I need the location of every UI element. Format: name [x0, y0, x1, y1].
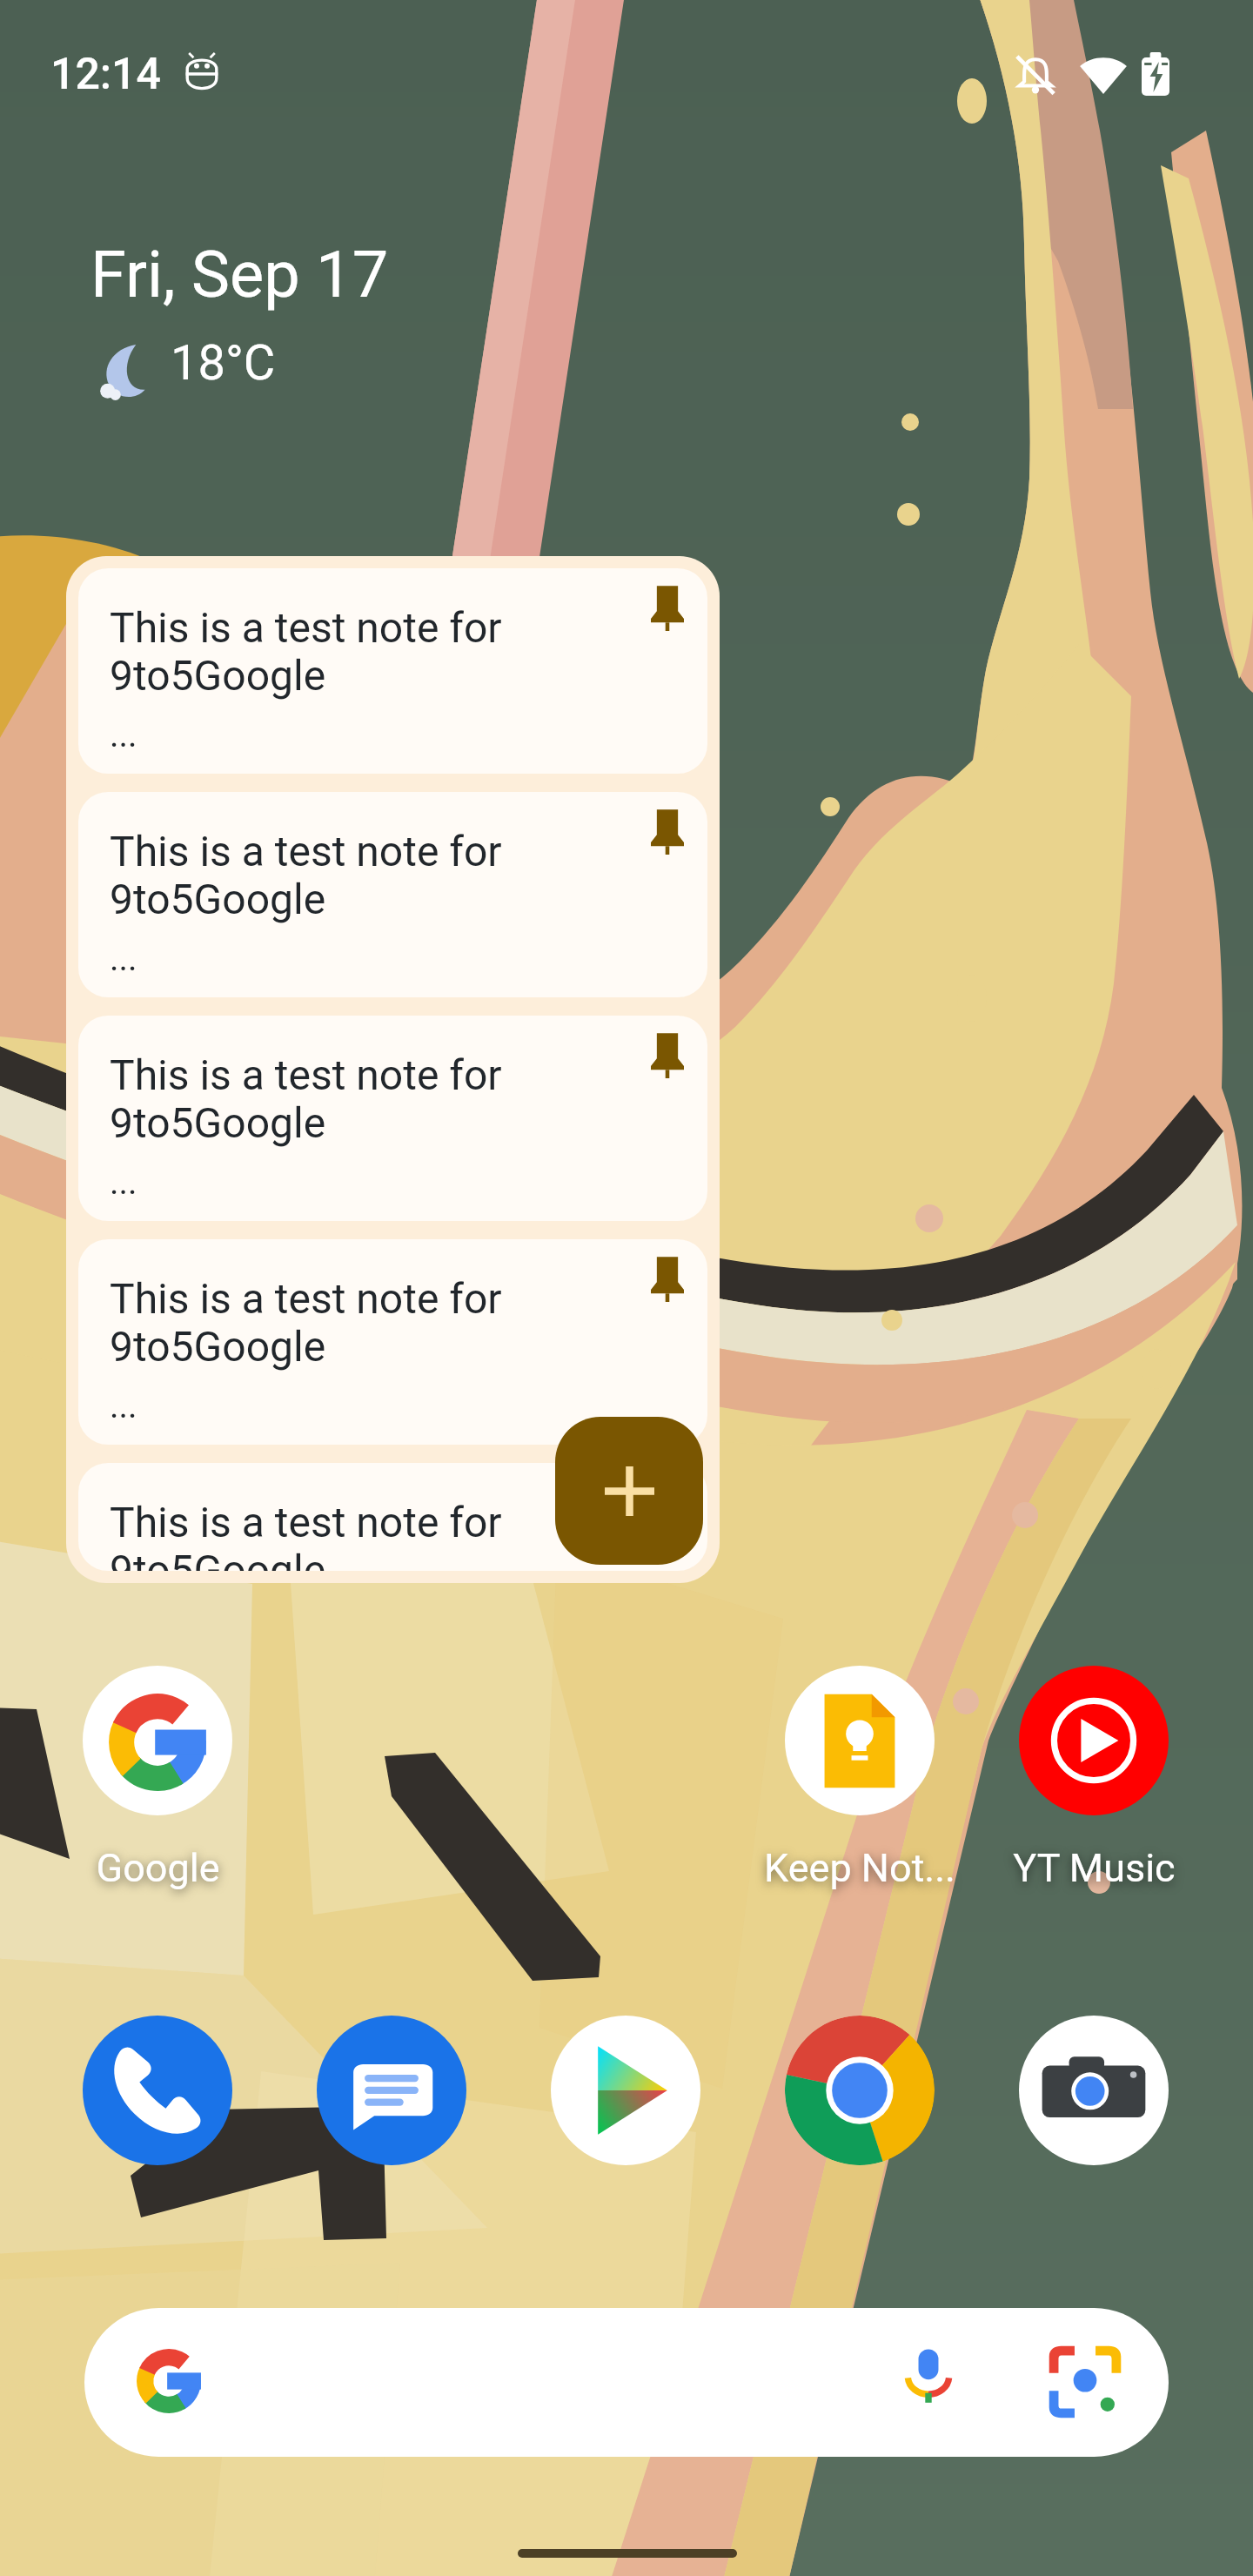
staticText: This is a test note for 9to5Google: [110, 1274, 603, 1372]
button[interactable]: [747, 2016, 972, 2165]
staticText: This is a test note for 9to5Google: [110, 1050, 603, 1148]
staticText: ...: [110, 714, 137, 755]
staticText: YT Music: [1013, 1845, 1176, 1891]
button[interactable]: This is a test note for 9to5Google: [78, 1463, 707, 1571]
button[interactable]: Google: [45, 1666, 270, 1891]
staticText: Keep Not...: [764, 1845, 955, 1891]
button[interactable]: [982, 2016, 1206, 2165]
staticText: This is a test note for 9to5Google: [110, 827, 603, 924]
staticText: ...: [110, 1385, 137, 1426]
staticText: Google: [96, 1845, 220, 1891]
staticText: 12:14: [50, 49, 161, 100]
button[interactable]: 18°C: [171, 334, 276, 392]
staticText: ...: [110, 938, 137, 979]
staticText: This is a test note for 9to5Google: [110, 603, 603, 701]
staticText: This is a test note for 9to5Google: [110, 1498, 603, 1571]
button[interactable]: New note: [555, 1417, 703, 1565]
button[interactable]: Search: [84, 2308, 1169, 2457]
button[interactable]: This is a test note for 9to5Google: [78, 1239, 707, 1445]
button[interactable]: [279, 2016, 504, 2165]
button[interactable]: This is a test note for 9to5Google: [78, 792, 707, 997]
button[interactable]: This is a test note for 9to5Google: [78, 568, 707, 774]
button[interactable]: Voice search: [896, 2343, 961, 2407]
button[interactable]: YT Music: [982, 1666, 1206, 1891]
staticText: ...: [110, 1162, 137, 1203]
button[interactable]: This is a test note for 9to5Google: [78, 1016, 707, 1221]
button[interactable]: Google Lens: [1048, 2345, 1122, 2419]
button[interactable]: [45, 2016, 270, 2165]
button[interactable]: This is a test note for 9to5Google: [66, 556, 720, 1583]
button[interactable]: Fri, Sep 17: [90, 237, 389, 312]
button[interactable]: Keep Not...: [747, 1666, 972, 1891]
button[interactable]: [513, 2016, 738, 2165]
